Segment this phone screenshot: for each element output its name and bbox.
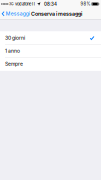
button[interactable]: 30 giorni [0,31,101,44]
staticText: 1 anno [5,48,20,54]
button[interactable]: Sempre [0,57,101,70]
staticText: Conserva i messaggi [31,10,82,17]
staticText: 3G [9,2,14,6]
staticText: Messaggi [6,11,30,17]
staticText: 98% [81,1,91,6]
staticText: Sempre [5,61,23,67]
staticText: 08:34 [44,1,57,7]
staticText: vodafone IT [14,1,36,6]
button[interactable]: Messaggi [0,8,32,19]
staticText: 30 giorni [5,35,25,41]
button[interactable]: 1 anno [0,44,101,57]
